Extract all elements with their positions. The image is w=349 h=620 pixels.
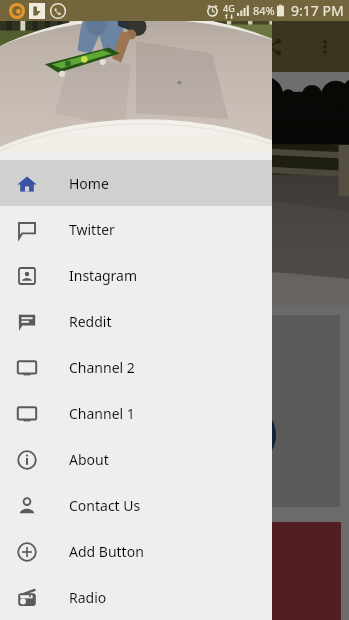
staticText: 4G <box>223 2 235 14</box>
button[interactable]: Twitter <box>0 206 272 252</box>
staticText: Twitter <box>69 220 115 239</box>
staticText: Add Button <box>69 542 144 561</box>
button[interactable]: Profile <box>212 403 276 467</box>
button[interactable]: Channel 1 <box>0 390 272 436</box>
button[interactable]: Channel 2 <box>0 344 272 390</box>
staticText: Contact Us <box>69 496 141 515</box>
button[interactable]: Reddit <box>0 298 272 344</box>
staticText: 9:17 PM <box>291 1 344 20</box>
button[interactable]: Contact Us <box>0 482 272 528</box>
button[interactable]: Radio <box>0 574 272 620</box>
button[interactable]: Instagram <box>0 252 272 298</box>
staticText: Radio <box>69 588 107 607</box>
staticText: About <box>69 450 109 469</box>
staticText: 84% <box>253 3 275 18</box>
staticText: Reddit <box>69 312 112 331</box>
staticText: Instagram <box>69 266 138 285</box>
staticText: Home <box>69 174 109 193</box>
staticText: Channel 1 <box>69 404 135 423</box>
staticText: Channel 2 <box>69 358 135 377</box>
button[interactable]: Share <box>251 25 295 69</box>
button[interactable]: Home <box>0 160 272 206</box>
button[interactable]: About <box>0 436 272 482</box>
button[interactable]: Add Button <box>0 528 272 574</box>
